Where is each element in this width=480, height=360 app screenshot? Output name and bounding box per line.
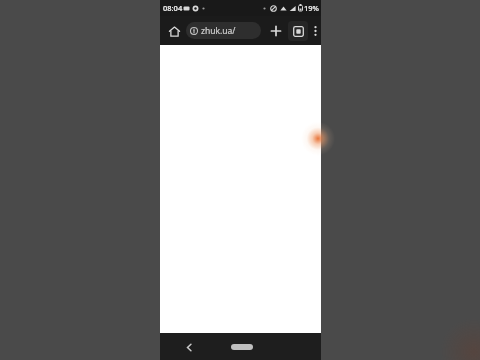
button[interactable]: Switch tabs	[288, 21, 308, 41]
staticText: 19%	[304, 3, 319, 13]
button[interactable]: More options	[309, 21, 321, 41]
button[interactable]: Home	[228, 338, 256, 356]
button[interactable]: New tab	[266, 21, 286, 41]
button[interactable]: Back	[180, 338, 198, 356]
button[interactable]: zhuk.ua/smartfo	[186, 22, 261, 39]
staticText: 08:04	[163, 3, 183, 13]
staticText: zhuk.ua/smartfo	[201, 25, 257, 37]
button[interactable]: Home	[164, 21, 184, 41]
